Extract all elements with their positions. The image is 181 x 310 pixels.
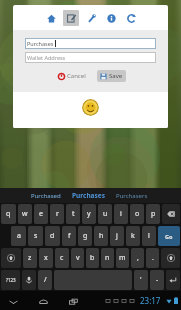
button[interactable]: Shift [1,248,21,268]
button[interactable]: Voice input [22,270,36,290]
staticText: h [99,231,104,241]
staticText: u [103,209,108,219]
staticText: f [68,231,71,241]
button[interactable]: q [1,204,16,224]
button[interactable]: r [50,204,64,224]
button[interactable]: p [146,204,160,224]
button[interactable]: , [131,248,144,268]
button[interactable]: Backspace [162,204,180,224]
staticText: b [90,253,95,263]
button[interactable]: Purchases [69,189,108,202]
staticText: Save [109,72,123,80]
button[interactable]: ' [134,270,148,290]
button[interactable]: Home [36,294,50,308]
staticText: . [152,253,154,263]
staticText: o [135,209,140,219]
staticText: Go [165,233,173,240]
staticText: , [137,253,139,263]
staticText: e [39,209,43,219]
button[interactable]: m [116,248,129,268]
button[interactable]: w [18,204,32,224]
button[interactable]: Settings [83,10,99,26]
staticText: Purchases [27,40,54,47]
staticText: g [83,231,88,241]
button[interactable]: x [39,248,53,268]
button[interactable]: Enter [166,270,180,290]
button[interactable]: t [66,204,80,224]
staticText: Purchases [72,191,105,200]
staticText: m [119,253,126,263]
button[interactable]: o [130,204,144,224]
staticText: v [76,253,80,263]
button[interactable]: Shift [161,248,180,268]
staticText: k [131,231,135,241]
staticText: Wallet Address [27,54,66,61]
button[interactable]: Purchases [25,38,156,49]
button[interactable]: / [38,270,52,290]
staticText: j [116,231,118,241]
button[interactable]: h [94,226,108,246]
button[interactable]: Coin [82,99,99,116]
button[interactable]: u [98,204,112,224]
button[interactable]: Back [6,294,20,308]
staticText: y [87,209,91,219]
button[interactable]: ?123 [1,270,20,290]
button[interactable]: z [23,248,37,268]
button[interactable]: d [45,226,60,246]
button[interactable]: j [110,226,124,246]
staticText: d [50,231,55,241]
button[interactable]: e [34,204,48,224]
staticText: a [17,231,21,241]
button[interactable]: i [114,204,128,224]
button[interactable]: l [142,226,156,246]
staticText: t [72,209,75,219]
button[interactable]: Cancel [55,70,89,82]
button[interactable]: f [62,226,76,246]
staticText: ?123 [6,277,16,283]
staticText: s [34,231,38,241]
staticText: Cancel [67,72,86,80]
button[interactable]: Edit [63,10,79,26]
button[interactable]: Go [158,226,180,246]
staticText: Purchased [31,192,61,200]
button[interactable]: y [82,204,96,224]
button[interactable]: Refresh [123,10,139,26]
staticText: Purchasers [116,192,148,200]
staticText: 23:17 [140,295,161,306]
button[interactable]: k [126,226,140,246]
button[interactable]: - [150,270,164,290]
button[interactable]: s [28,226,43,246]
button[interactable]: Wallet Address [25,52,156,63]
button[interactable]: n [101,248,114,268]
staticText: w [22,209,28,219]
staticText: - [156,275,159,285]
button[interactable]: Info [103,10,119,26]
staticText: p [151,209,156,219]
staticText: l [148,231,150,241]
staticText: / [44,275,47,285]
staticText: z [28,253,32,263]
staticText: q [6,209,11,219]
button[interactable]: Recents [66,294,80,308]
button[interactable]: Purchasers [113,190,151,202]
button[interactable]: c [55,248,69,268]
staticText: c [60,253,64,263]
button[interactable]: . [146,248,159,268]
staticText: x [44,253,48,263]
staticText: n [105,253,110,263]
staticText: ' [140,275,142,285]
staticText: r [56,209,59,219]
button[interactable]: g [78,226,92,246]
button[interactable]: Save [97,70,126,82]
button[interactable]: Home [43,10,59,26]
button[interactable]: a [11,226,26,246]
button[interactable]: Purchased [28,190,64,202]
button[interactable]: b [86,248,99,268]
button[interactable]: v [71,248,84,268]
staticText: i [120,209,122,219]
